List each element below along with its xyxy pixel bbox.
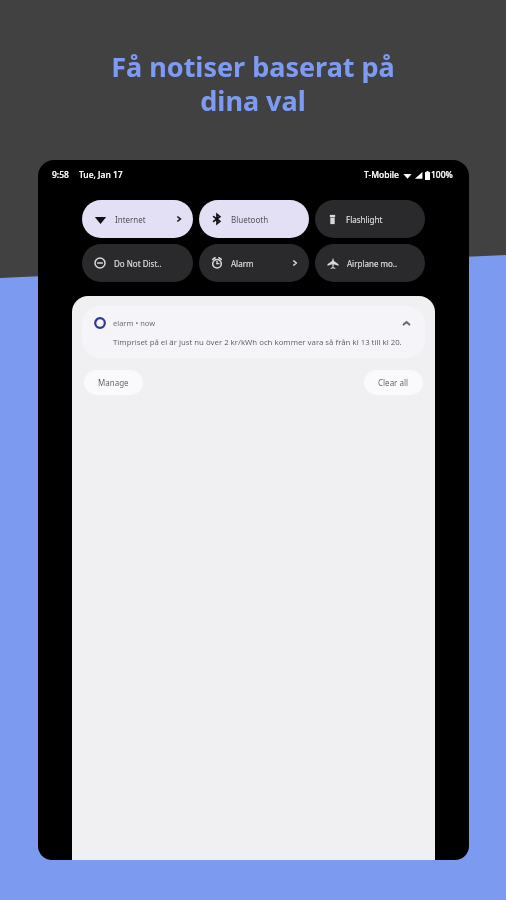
staticText: Bluetooth: [231, 214, 269, 225]
button[interactable]: elarm • now: [82, 306, 425, 358]
button[interactable]: Flashlight: [315, 200, 425, 238]
staticText: Internet: [115, 214, 146, 225]
staticText: Tue, Jan 17: [79, 169, 123, 181]
button[interactable]: Airplane mo..: [315, 244, 425, 282]
button[interactable]: Collapse: [399, 316, 413, 330]
staticText: Airplane mo..: [347, 258, 398, 269]
staticText: elarm • now: [113, 318, 156, 328]
button[interactable]: Alarm: [199, 244, 309, 282]
button[interactable]: Clear all: [364, 370, 423, 395]
staticText: 100%: [431, 169, 453, 181]
button[interactable]: Bluetooth: [199, 200, 309, 238]
staticText: Få notiser baserat på dina val: [111, 48, 395, 119]
staticText: Do Not Dist..: [114, 258, 162, 269]
staticText: Alarm: [231, 258, 254, 269]
button[interactable]: Internet: [82, 200, 193, 238]
staticText: 9:58: [52, 169, 69, 181]
staticText: Timpriset på el är just nu över 2 kr/kWh…: [113, 337, 402, 348]
staticText: Manage: [98, 377, 129, 388]
staticText: Clear all: [378, 377, 409, 388]
staticText: Flashlight: [346, 214, 383, 225]
staticText: T-Mobile: [364, 169, 399, 181]
button[interactable]: Do Not Dist..: [82, 244, 193, 282]
button[interactable]: Manage: [84, 370, 143, 395]
